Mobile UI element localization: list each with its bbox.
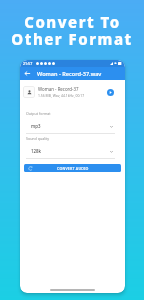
- button[interactable]: Woman - Record-37: [23, 81, 114, 103]
- staticText: 1.56 MB, Wav, 44.1kHz, 00:17: [38, 93, 85, 98]
- staticText: mp3: [31, 123, 110, 129]
- staticText: Output format: [26, 111, 51, 116]
- button[interactable]: CONVERT AUDIO: [24, 164, 121, 172]
- button[interactable]: Output format: [26, 111, 119, 134]
- staticText: Other Format: [11, 29, 133, 49]
- staticText: 21:57: [23, 61, 33, 66]
- button[interactable]: Back: [23, 69, 32, 78]
- staticText: Woman - Record-37.wav: [37, 70, 102, 78]
- staticText: Woman - Record-37: [38, 86, 79, 92]
- staticText: Convert To: [24, 12, 121, 32]
- button[interactable]: Sound quality: [26, 136, 119, 159]
- staticText: 128k: [31, 148, 110, 154]
- button[interactable]: Play: [107, 89, 114, 96]
- staticText: Sound quality: [26, 136, 50, 141]
- staticText: CONVERT AUDIO: [57, 166, 89, 171]
